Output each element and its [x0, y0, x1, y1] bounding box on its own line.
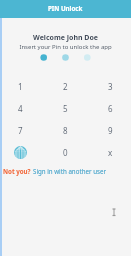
- button[interactable]: Unlock with fingerprint: [9, 141, 31, 163]
- button[interactable]: 7: [9, 119, 31, 141]
- staticText: 9: [108, 125, 113, 136]
- staticText: x: [108, 147, 113, 158]
- button[interactable]: 3: [99, 75, 121, 97]
- button[interactable]: PIN Unlock: [0, 0, 131, 18]
- staticText: 7: [18, 125, 23, 136]
- staticText: 2: [63, 81, 68, 92]
- button[interactable]: 5: [54, 97, 76, 119]
- button[interactable]: 9: [99, 119, 121, 141]
- staticText: 0: [63, 147, 68, 158]
- button[interactable]: 0: [54, 141, 76, 163]
- staticText: 6: [108, 103, 113, 114]
- staticText: 1: [18, 81, 23, 92]
- staticText: 3: [108, 81, 113, 92]
- staticText: 5: [63, 103, 68, 114]
- button[interactable]: Not you?: [3, 166, 106, 176]
- staticText: 8: [63, 125, 68, 136]
- button[interactable]: 8: [54, 119, 76, 141]
- staticText: Insert your Pin to unlock the app: [0, 43, 131, 51]
- staticText: Sign in with another user: [33, 167, 106, 175]
- staticText: PIN Unlock: [48, 4, 83, 12]
- button[interactable]: 2: [54, 75, 76, 97]
- staticText: 4: [18, 103, 23, 114]
- button[interactable]: 1: [9, 75, 31, 97]
- button[interactable]: x: [99, 141, 121, 163]
- button[interactable]: 6: [99, 97, 121, 119]
- staticText: Not you?: [3, 167, 33, 175]
- staticText: Welcome John Doe: [0, 33, 131, 43]
- button[interactable]: 4: [9, 97, 31, 119]
